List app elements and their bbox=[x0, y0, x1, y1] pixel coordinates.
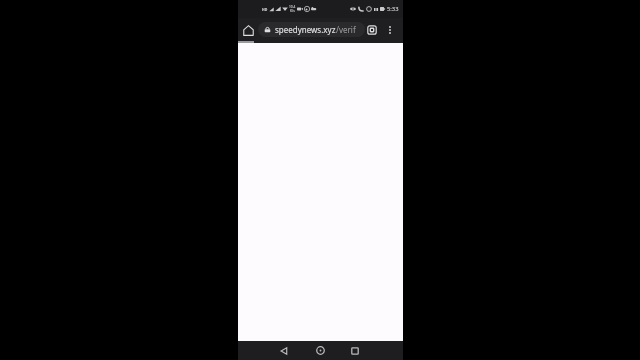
staticText: K/s bbox=[290, 9, 295, 13]
button[interactable]: Home bbox=[310, 341, 330, 360]
staticText: 10.4 bbox=[289, 5, 296, 9]
button[interactable]: Switch or open tabs bbox=[365, 23, 379, 37]
staticText: /verif bbox=[336, 24, 356, 35]
staticText: speedynews.xyz bbox=[275, 24, 336, 35]
button[interactable]: Home bbox=[240, 22, 256, 38]
button[interactable]: Back bbox=[274, 341, 294, 360]
button[interactable]: Recent apps bbox=[345, 341, 365, 360]
staticText: 5:33 bbox=[387, 5, 399, 13]
button[interactable]: speedynews.xyz bbox=[258, 22, 365, 37]
staticText: HD bbox=[262, 7, 268, 12]
button[interactable]: More options bbox=[383, 23, 397, 37]
